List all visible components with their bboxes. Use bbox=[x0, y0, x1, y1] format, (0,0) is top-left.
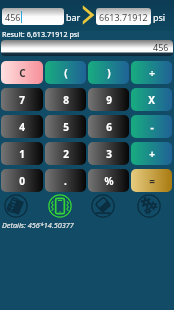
staticText: 2 bbox=[63, 147, 69, 161]
button[interactable]: 4 bbox=[1, 115, 43, 138]
button[interactable]: C bbox=[1, 61, 43, 84]
staticText: ( bbox=[64, 66, 68, 80]
staticText: 456 bbox=[153, 41, 169, 53]
button[interactable]: . bbox=[45, 169, 86, 192]
staticText: = bbox=[149, 174, 155, 188]
staticText: Result: 6,613.71912 psi bbox=[2, 29, 80, 39]
staticText: C bbox=[19, 66, 26, 80]
button[interactable]: Shake to calculate bbox=[4, 194, 28, 218]
button[interactable]: 3 bbox=[88, 142, 129, 165]
staticText: ) bbox=[107, 66, 111, 80]
button[interactable]: Erase bbox=[91, 194, 115, 218]
staticText: ÷ bbox=[149, 66, 155, 80]
staticText: + bbox=[149, 147, 155, 161]
button[interactable]: 456 bbox=[2, 8, 64, 25]
button[interactable]: 6613.71912 bbox=[96, 8, 151, 25]
staticText: 5 bbox=[63, 120, 69, 134]
staticText: 6 bbox=[106, 120, 112, 134]
staticText: % bbox=[104, 174, 114, 188]
staticText: Details: 456*14.50377 bbox=[2, 220, 74, 230]
staticText: X bbox=[148, 93, 155, 107]
button[interactable]: Vibrate bbox=[48, 194, 72, 218]
button[interactable]: 6 bbox=[88, 115, 129, 138]
staticText: 1 bbox=[19, 147, 25, 161]
button[interactable]: Settings bbox=[137, 194, 161, 218]
staticText: 6613.71912 bbox=[99, 11, 148, 23]
button[interactable]: 0 bbox=[1, 169, 43, 192]
staticText: 0 bbox=[19, 174, 25, 188]
button[interactable]: 5 bbox=[45, 115, 86, 138]
staticText: . bbox=[64, 174, 67, 188]
button[interactable]: 1 bbox=[1, 142, 43, 165]
staticText: 8 bbox=[63, 93, 69, 107]
button[interactable]: + bbox=[131, 142, 172, 165]
button[interactable]: - bbox=[131, 115, 172, 138]
button[interactable]: ) bbox=[88, 61, 129, 84]
button[interactable]: 8 bbox=[45, 88, 86, 111]
button[interactable]: 9 bbox=[88, 88, 129, 111]
button[interactable]: 2 bbox=[45, 142, 86, 165]
staticText: 3 bbox=[106, 147, 112, 161]
button[interactable]: 456 bbox=[1, 40, 173, 56]
staticText: psi bbox=[153, 11, 166, 23]
button[interactable]: ( bbox=[45, 61, 86, 84]
staticText: - bbox=[150, 120, 154, 134]
staticText: 9 bbox=[106, 93, 112, 107]
staticText: 7 bbox=[19, 93, 25, 107]
button[interactable]: = bbox=[131, 169, 172, 192]
button[interactable]: ÷ bbox=[131, 61, 172, 84]
staticText: bar bbox=[66, 11, 81, 23]
button[interactable]: % bbox=[88, 169, 129, 192]
button[interactable]: 7 bbox=[1, 88, 43, 111]
button[interactable]: X bbox=[131, 88, 172, 111]
staticText: 456 bbox=[5, 11, 21, 23]
staticText: 4 bbox=[19, 120, 25, 134]
